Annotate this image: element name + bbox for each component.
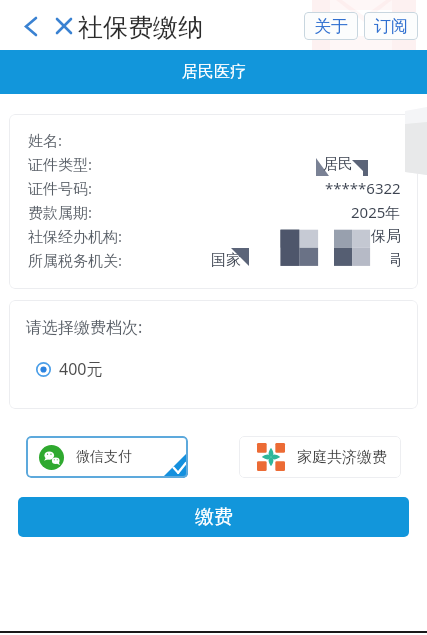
button[interactable]: 缴费 (18, 497, 409, 537)
staticText: 订阅 (374, 16, 408, 37)
staticText: 社保经办机构: (28, 226, 123, 246)
staticText: 费款属期: (28, 202, 93, 222)
staticText: 社保费缴纳 (78, 12, 203, 43)
staticText: *****6322 (325, 178, 401, 198)
button[interactable]: 家庭共济缴费 (239, 436, 401, 478)
button[interactable]: 400元 (36, 358, 103, 380)
staticText: 2025年 (351, 202, 401, 222)
staticText: 所属税务机关: (28, 250, 123, 270)
staticText: 局 (386, 251, 401, 270)
staticText: 微信支付 (76, 448, 132, 466)
button[interactable]: 关于 (304, 12, 358, 40)
staticText: 居民医疗 (182, 62, 246, 82)
staticText: 证件类型: (28, 154, 93, 174)
staticText: 证件号码: (28, 178, 93, 198)
button[interactable]: 微信支付 (26, 436, 188, 478)
staticText: 关于 (314, 16, 348, 37)
button[interactable]: 订阅 (364, 12, 418, 40)
staticText: 缴费 (195, 505, 233, 529)
staticText: 居民 (323, 155, 353, 174)
button[interactable]: Close (49, 11, 79, 41)
staticText: 家庭共济缴费 (297, 448, 387, 467)
staticText: 400元 (59, 358, 103, 380)
staticText: 请选择缴费档次: (26, 316, 143, 338)
staticText: 姓名: (28, 130, 63, 150)
button[interactable]: Back (16, 11, 46, 41)
staticText: 保局 (371, 227, 401, 246)
staticText: 国家 (211, 251, 241, 270)
